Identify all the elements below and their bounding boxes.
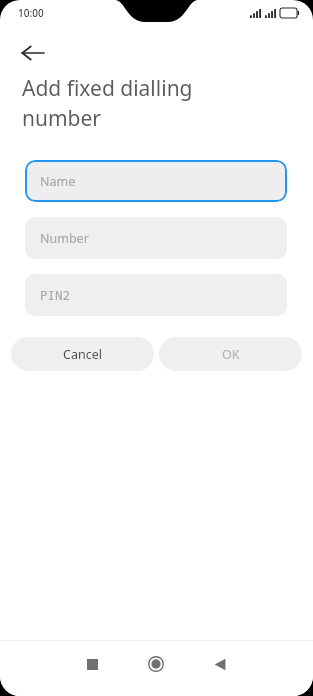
button[interactable]: Cancel bbox=[11, 337, 154, 371]
staticText: Add fixed dialling number bbox=[22, 74, 193, 132]
button[interactable]: Number bbox=[25, 217, 287, 259]
button[interactable]: Back bbox=[200, 644, 240, 684]
staticText: OK bbox=[222, 346, 240, 363]
button[interactable]: OK bbox=[159, 337, 302, 371]
staticText: PIN2 bbox=[40, 287, 71, 304]
staticText: 10:00 bbox=[18, 6, 44, 20]
staticText: Number bbox=[40, 230, 89, 247]
button[interactable]: Recents bbox=[72, 644, 112, 684]
button[interactable]: PIN2 bbox=[25, 274, 287, 316]
button[interactable]: Home bbox=[136, 644, 176, 684]
button[interactable]: Back bbox=[10, 30, 56, 76]
button[interactable]: Name bbox=[25, 160, 287, 202]
staticText: Cancel bbox=[63, 346, 102, 363]
staticText: Name bbox=[40, 173, 76, 190]
